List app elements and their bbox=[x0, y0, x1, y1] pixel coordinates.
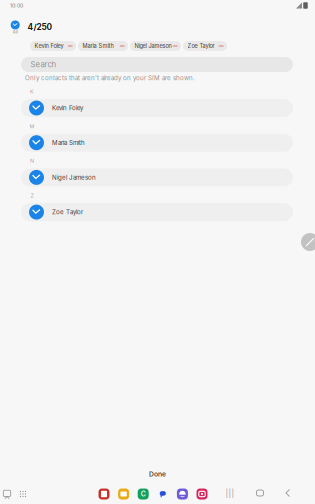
button[interactable]: Nigel Jameson bbox=[21, 168, 293, 186]
button[interactable]: Home bbox=[252, 485, 268, 501]
button[interactable]: Internet bbox=[175, 487, 189, 501]
button[interactable]: Zoe Taylor bbox=[183, 41, 227, 51]
button[interactable]: Kevin Foley bbox=[30, 41, 76, 51]
staticText: Kevin Foley bbox=[34, 43, 63, 49]
staticText: Z bbox=[30, 192, 33, 199]
staticText: All bbox=[13, 29, 18, 35]
button[interactable]: Maria Smith bbox=[21, 134, 293, 152]
staticText: Zoe Taylor bbox=[52, 208, 83, 216]
button[interactable]: My Files bbox=[117, 487, 131, 501]
button[interactable]: Kevin Foley bbox=[21, 99, 293, 117]
staticText: Kevin Foley bbox=[52, 104, 83, 112]
button[interactable]: Zoe Taylor bbox=[21, 203, 293, 221]
staticText: Maria Smith bbox=[82, 43, 113, 49]
staticText: Nigel Jameson bbox=[52, 174, 96, 181]
staticText: N bbox=[30, 158, 34, 164]
button[interactable]: Calculator bbox=[136, 487, 150, 501]
staticText: Nigel Jameson bbox=[134, 43, 171, 49]
button[interactable]: Office bbox=[97, 487, 111, 501]
staticText: Done bbox=[149, 470, 166, 478]
button[interactable]: Messages bbox=[156, 487, 170, 501]
staticText: M bbox=[29, 123, 34, 129]
staticText: Maria Smith bbox=[52, 139, 85, 146]
button[interactable]: Camera bbox=[195, 487, 209, 501]
button[interactable]: Select all bbox=[6, 19, 24, 35]
button[interactable]: Apps bbox=[16, 487, 30, 501]
staticText: Zoe Taylor bbox=[187, 43, 214, 49]
button[interactable]: Nigel Jameson bbox=[130, 41, 181, 51]
staticText: Only contacts that aren't already on you… bbox=[25, 74, 195, 82]
staticText: 10:00 bbox=[10, 2, 23, 9]
staticText: C bbox=[141, 490, 146, 498]
button[interactable]: Maria Smith bbox=[78, 41, 128, 51]
staticText: ||| bbox=[225, 488, 234, 498]
button[interactable]: Done bbox=[97, 466, 217, 482]
button[interactable]: Recents bbox=[0, 487, 14, 501]
button[interactable]: Search bbox=[21, 57, 293, 72]
staticText: Search bbox=[30, 60, 56, 69]
button[interactable]: Recent apps bbox=[222, 485, 238, 501]
button[interactable]: Scroll index bbox=[301, 233, 315, 251]
staticText: K bbox=[30, 88, 34, 95]
button[interactable]: Back bbox=[280, 485, 296, 501]
staticText: 4/250 bbox=[27, 22, 52, 32]
